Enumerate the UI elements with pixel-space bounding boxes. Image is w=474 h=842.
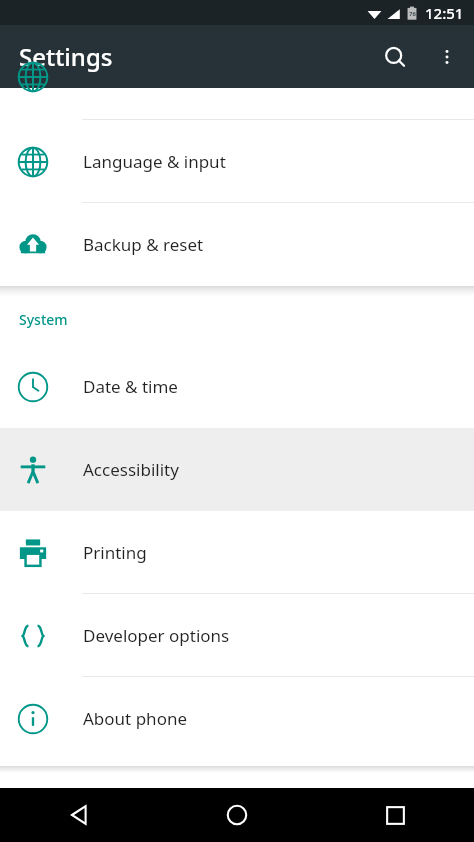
staticText: Settings xyxy=(19,40,113,73)
button[interactable]: Home xyxy=(158,788,316,842)
staticText: 12:51 xyxy=(425,3,464,23)
staticText: Printing xyxy=(83,541,147,564)
button[interactable]: Backup & reset xyxy=(0,203,474,286)
button[interactable]: Language & input xyxy=(0,120,474,203)
staticText: System xyxy=(19,310,68,329)
staticText: Date & time xyxy=(83,375,178,398)
staticText: Language & input xyxy=(83,150,226,173)
button[interactable]: Back xyxy=(0,788,158,842)
staticText: About phone xyxy=(83,707,188,730)
button[interactable] xyxy=(0,88,474,120)
staticText: Accessibility xyxy=(83,458,179,481)
staticText: Developer options xyxy=(83,624,230,647)
button[interactable]: More options xyxy=(424,34,470,80)
button[interactable]: Recent apps xyxy=(316,788,474,842)
button[interactable]: Accessibility xyxy=(0,428,474,511)
staticText: 76 xyxy=(409,10,416,18)
staticText: Backup & reset xyxy=(83,233,204,256)
button[interactable]: Developer options xyxy=(0,594,474,677)
button[interactable]: Date & time xyxy=(0,345,474,428)
button[interactable]: About phone xyxy=(0,677,474,760)
button[interactable]: Search xyxy=(372,34,418,80)
button[interactable]: Printing xyxy=(0,511,474,594)
